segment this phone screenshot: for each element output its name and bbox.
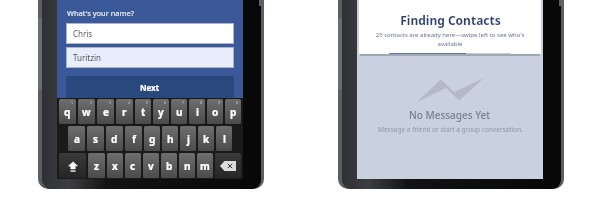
staticText: 6	[164, 100, 167, 105]
staticText: 0	[236, 100, 239, 105]
staticText: a	[74, 132, 80, 146]
button[interactable]: 1	[59, 99, 76, 124]
staticText: m	[200, 159, 210, 173]
staticText: i	[196, 105, 199, 119]
staticText: t	[141, 105, 146, 119]
button[interactable]: Turitzin	[67, 48, 233, 67]
button[interactable]: f	[125, 126, 142, 151]
staticText: n	[184, 159, 191, 173]
staticText: Next	[140, 82, 160, 93]
staticText: o	[212, 105, 219, 119]
staticText: 8	[200, 100, 203, 105]
staticText: b	[166, 159, 173, 173]
staticText: 1	[71, 100, 74, 105]
staticText: Chris	[73, 28, 93, 39]
button[interactable]: b	[161, 153, 177, 178]
staticText: g	[149, 132, 156, 146]
staticText: 7	[182, 100, 185, 105]
button[interactable]: s	[87, 126, 104, 151]
button[interactable]: z	[88, 153, 105, 178]
button[interactable]: 4	[116, 99, 133, 124]
staticText: u	[176, 105, 183, 119]
button[interactable]: Next	[66, 76, 234, 98]
staticText: 2	[90, 100, 93, 105]
staticText: k	[203, 132, 210, 146]
staticText: Turitzin	[73, 52, 102, 63]
button[interactable]: 3	[97, 99, 114, 124]
staticText: 4	[128, 100, 131, 105]
staticText: No Messages Yet	[409, 108, 491, 122]
staticText: 25 contacts are already here—swipe left …	[367, 31, 533, 48]
staticText: d	[111, 132, 118, 146]
button[interactable]: Finding Contacts	[359, 0, 541, 54]
staticText: l	[223, 132, 226, 146]
staticText: What's your name?	[67, 8, 135, 18]
staticText: f	[132, 132, 136, 146]
staticText: e	[103, 105, 109, 119]
staticText: c	[130, 159, 136, 173]
staticText: 3	[109, 100, 112, 105]
staticText: Message a friend or start a group conver…	[378, 125, 523, 134]
button[interactable]: 7	[171, 99, 187, 124]
staticText: h	[167, 132, 174, 146]
button[interactable]: j	[180, 126, 196, 151]
staticText: j	[187, 132, 190, 146]
button[interactable]: v	[143, 153, 159, 178]
staticText: z	[94, 159, 99, 173]
staticText: v	[148, 159, 154, 173]
staticText: x	[112, 159, 118, 173]
button[interactable]: Chris	[67, 24, 233, 43]
staticText: p	[230, 105, 237, 119]
button[interactable]: 5	[135, 99, 151, 124]
button[interactable]: x	[107, 153, 123, 178]
button[interactable]: 6	[153, 99, 169, 124]
button[interactable]: 0	[225, 99, 241, 124]
staticText: w	[82, 105, 91, 119]
button[interactable]: 8	[189, 99, 205, 124]
button[interactable]: Shift	[59, 153, 86, 178]
button[interactable]: h	[162, 126, 178, 151]
staticText: r	[122, 105, 127, 119]
staticText: 5	[146, 100, 149, 105]
button[interactable]: g	[144, 126, 160, 151]
button[interactable]: 9	[207, 99, 223, 124]
button[interactable]: 2	[78, 99, 95, 124]
button[interactable]: k	[198, 126, 214, 151]
button[interactable]: n	[179, 153, 195, 178]
staticText: 9	[218, 100, 221, 105]
button[interactable]: d	[106, 126, 123, 151]
button[interactable]: Delete	[215, 153, 241, 178]
staticText: Finding Contacts	[400, 12, 501, 28]
staticText: q	[64, 105, 71, 119]
button[interactable]: m	[197, 153, 213, 178]
staticText: y	[158, 105, 164, 119]
button[interactable]: a	[68, 126, 85, 151]
staticText: s	[93, 132, 99, 146]
button[interactable]: c	[125, 153, 141, 178]
button[interactable]: l	[216, 126, 232, 151]
